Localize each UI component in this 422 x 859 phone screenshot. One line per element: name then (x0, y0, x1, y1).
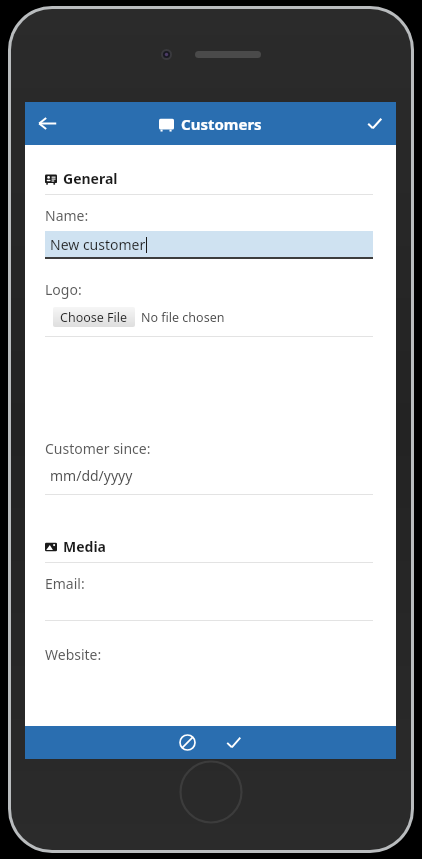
staticText: mm/dd/yyyy (50, 466, 133, 485)
staticText: Website: (45, 645, 102, 664)
button[interactable]: New customer (45, 231, 373, 257)
staticText: Name: (45, 206, 89, 225)
staticText: General (63, 169, 118, 188)
staticText: Email: (45, 574, 85, 593)
button[interactable]: Save (352, 102, 396, 145)
staticText: No file chosen (141, 309, 225, 326)
button[interactable]: Choose File (53, 307, 135, 327)
staticText: Media (63, 537, 106, 556)
button[interactable]: Back (25, 102, 69, 145)
button[interactable]: Confirm (217, 726, 250, 759)
staticText: Logo: (45, 280, 82, 299)
button[interactable]: Cancel (171, 726, 204, 759)
staticText: Choose File (60, 309, 128, 326)
staticText: Customers (181, 114, 262, 134)
staticText: New customer (50, 235, 146, 254)
staticText: Customer since: (45, 439, 151, 458)
